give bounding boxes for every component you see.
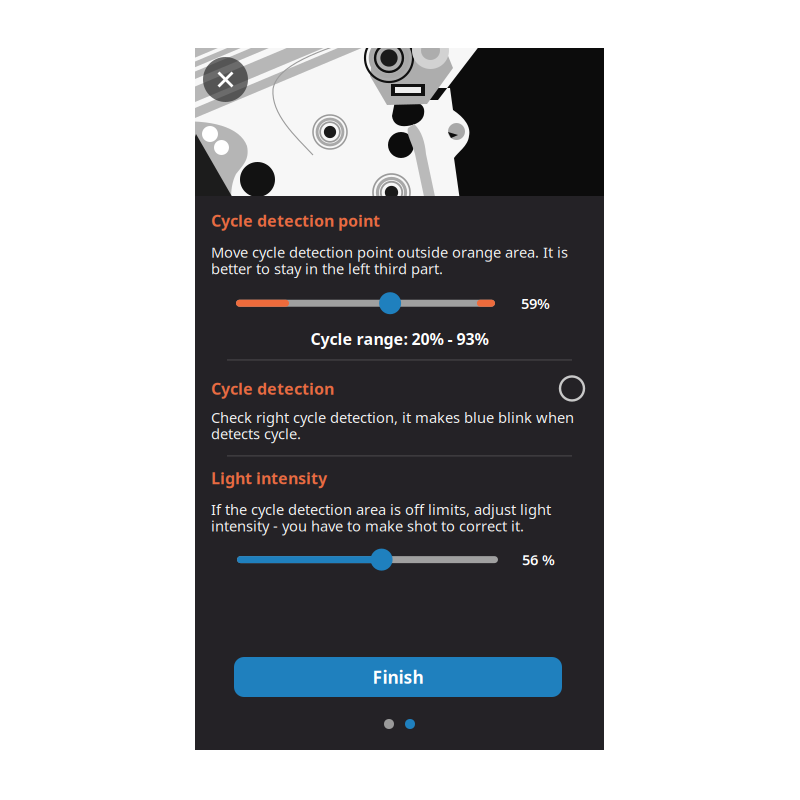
staticText: Cycle detection xyxy=(211,378,334,399)
staticText: Finish xyxy=(372,665,423,688)
staticText: If the cycle detection area is off limit… xyxy=(211,500,551,536)
staticText: Check right cycle detection, it makes bl… xyxy=(211,407,574,443)
staticText: Move cycle detection point outside orang… xyxy=(211,242,568,278)
staticText: 59% xyxy=(521,293,550,313)
staticText: Cycle range: 20% - 93% xyxy=(310,328,488,349)
staticText: 56 % xyxy=(522,550,555,569)
staticText: Cycle detection point xyxy=(211,210,380,231)
button[interactable]: Close xyxy=(203,57,248,102)
staticText: Light intensity xyxy=(211,467,327,489)
button[interactable]: Finish xyxy=(234,657,562,697)
